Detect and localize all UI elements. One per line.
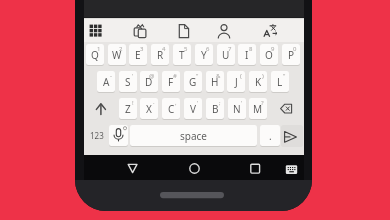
staticText: 1 bbox=[97, 45, 101, 53]
staticText: N bbox=[233, 102, 241, 116]
button[interactable]: O bbox=[260, 44, 278, 65]
staticText: G bbox=[189, 75, 197, 89]
staticText: " bbox=[283, 72, 286, 80]
staticText: ; bbox=[219, 99, 221, 107]
staticText: space bbox=[180, 129, 207, 143]
staticText: ' bbox=[241, 99, 243, 107]
button[interactable]: E bbox=[129, 44, 147, 65]
button[interactable]: M bbox=[249, 98, 267, 119]
button[interactable]: X bbox=[140, 98, 158, 119]
staticText: Y bbox=[201, 48, 207, 62]
staticText: S bbox=[125, 75, 131, 89]
staticText: · bbox=[153, 99, 155, 107]
staticText: Q bbox=[91, 48, 99, 62]
staticText: H bbox=[211, 75, 219, 89]
button[interactable] bbox=[172, 18, 194, 42]
button[interactable]: K bbox=[249, 71, 267, 92]
button[interactable]: G bbox=[184, 71, 202, 92]
button[interactable]: L bbox=[271, 71, 289, 92]
staticText: ? bbox=[261, 99, 264, 107]
button[interactable]: space bbox=[130, 125, 257, 146]
button[interactable]: 123 bbox=[86, 125, 107, 146]
button[interactable]: U bbox=[217, 44, 235, 65]
staticText: M bbox=[253, 102, 263, 116]
staticText: O bbox=[265, 48, 273, 62]
button[interactable]: Z bbox=[119, 98, 137, 119]
staticText: I bbox=[245, 48, 249, 62]
button[interactable] bbox=[121, 156, 145, 180]
staticText: , bbox=[175, 99, 177, 107]
staticText: K bbox=[255, 75, 262, 89]
button[interactable]: Q bbox=[86, 44, 104, 65]
staticText: ( bbox=[240, 72, 242, 80]
staticText: R bbox=[157, 48, 164, 62]
button[interactable] bbox=[128, 18, 150, 42]
staticText: V bbox=[190, 102, 196, 116]
staticText: L bbox=[277, 75, 283, 89]
staticText: 5 bbox=[184, 45, 188, 53]
button[interactable] bbox=[279, 156, 303, 180]
button[interactable] bbox=[84, 18, 106, 42]
button[interactable] bbox=[281, 125, 303, 147]
staticText: D bbox=[145, 75, 153, 89]
staticText: 0 bbox=[293, 45, 297, 53]
staticText: ' bbox=[132, 72, 134, 80]
button[interactable]: P bbox=[282, 44, 300, 65]
staticText: A bbox=[103, 75, 110, 89]
button[interactable]: T bbox=[173, 44, 191, 65]
staticText: J bbox=[235, 75, 238, 89]
staticText: - bbox=[110, 72, 112, 80]
button[interactable]: . bbox=[260, 125, 280, 146]
staticText: " bbox=[196, 72, 199, 80]
button[interactable]: W bbox=[108, 44, 126, 65]
staticText: @ bbox=[149, 72, 155, 80]
staticText: # bbox=[173, 72, 177, 80]
staticText: 123 bbox=[90, 130, 104, 141]
staticText: U bbox=[222, 48, 230, 62]
button[interactable] bbox=[259, 18, 281, 42]
button[interactable]: A bbox=[97, 71, 115, 92]
staticText: ) bbox=[262, 72, 264, 80]
button[interactable]: V bbox=[184, 98, 202, 119]
staticText: 9 bbox=[271, 45, 275, 53]
button[interactable]: N bbox=[228, 98, 246, 119]
button[interactable]: S bbox=[119, 71, 137, 92]
button[interactable] bbox=[86, 98, 116, 119]
staticText: X bbox=[146, 102, 152, 116]
button[interactable]: D bbox=[140, 71, 158, 92]
button[interactable]: C bbox=[162, 98, 180, 119]
staticText: T bbox=[179, 48, 185, 62]
staticText: Z bbox=[125, 102, 131, 116]
staticText: . bbox=[269, 129, 272, 143]
staticText: & bbox=[216, 72, 221, 80]
staticText: 6 bbox=[206, 45, 210, 53]
button[interactable]: J bbox=[227, 71, 245, 92]
staticText: W bbox=[112, 48, 122, 62]
button[interactable]: Y bbox=[195, 44, 213, 65]
staticText: 3 bbox=[140, 45, 144, 53]
staticText: 7 bbox=[228, 45, 232, 53]
staticText: 4 bbox=[162, 45, 166, 53]
staticText: P bbox=[288, 48, 295, 62]
staticText: 8 bbox=[249, 45, 253, 53]
staticText: B bbox=[212, 102, 219, 116]
staticText: 2 bbox=[119, 45, 123, 53]
button[interactable] bbox=[215, 18, 237, 42]
button[interactable] bbox=[243, 156, 267, 180]
button[interactable]: R bbox=[151, 44, 169, 65]
staticText: C bbox=[168, 102, 175, 116]
staticText: F bbox=[168, 75, 174, 89]
button[interactable]: F bbox=[162, 71, 180, 92]
button[interactable] bbox=[270, 98, 302, 119]
staticText: E bbox=[135, 48, 141, 62]
button[interactable] bbox=[183, 156, 207, 180]
button[interactable]: B bbox=[206, 98, 224, 119]
staticText: ! bbox=[132, 99, 134, 107]
button[interactable]: H bbox=[206, 71, 224, 92]
button[interactable]: I bbox=[238, 44, 256, 65]
staticText: ' bbox=[197, 99, 199, 107]
button[interactable] bbox=[109, 125, 128, 146]
